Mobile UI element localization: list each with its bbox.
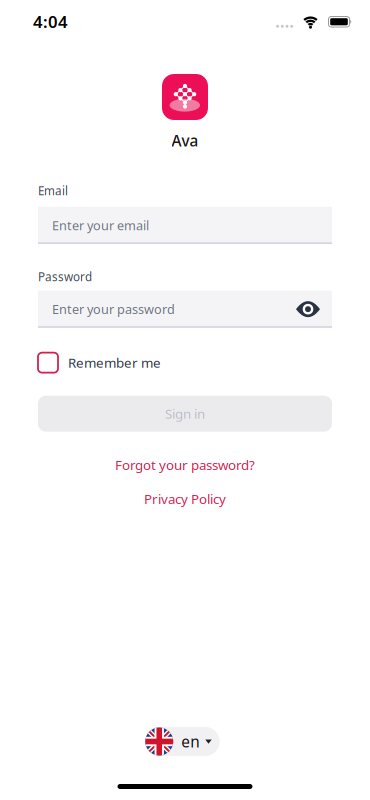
staticText: Ava	[171, 130, 198, 151]
staticText: 4:04	[33, 10, 68, 33]
button[interactable]: Sign in	[38, 396, 332, 432]
staticText: Password	[38, 269, 92, 285]
staticText: Enter your email	[52, 217, 149, 234]
staticText: Privacy Policy	[144, 490, 226, 508]
button[interactable]: Change language	[145, 727, 220, 756]
button[interactable]: Forgot your password?	[115, 456, 255, 474]
staticText: Forgot your password?	[115, 456, 255, 474]
staticText: Enter your password	[52, 300, 175, 318]
button[interactable]: Privacy Policy	[144, 490, 226, 508]
staticText: Remember me	[68, 354, 161, 372]
button[interactable]: Remember me	[38, 353, 161, 373]
staticText: Sign in	[165, 405, 205, 423]
button[interactable]: Show password	[296, 301, 320, 318]
staticText: Email	[38, 183, 68, 199]
staticText: en	[181, 731, 199, 752]
